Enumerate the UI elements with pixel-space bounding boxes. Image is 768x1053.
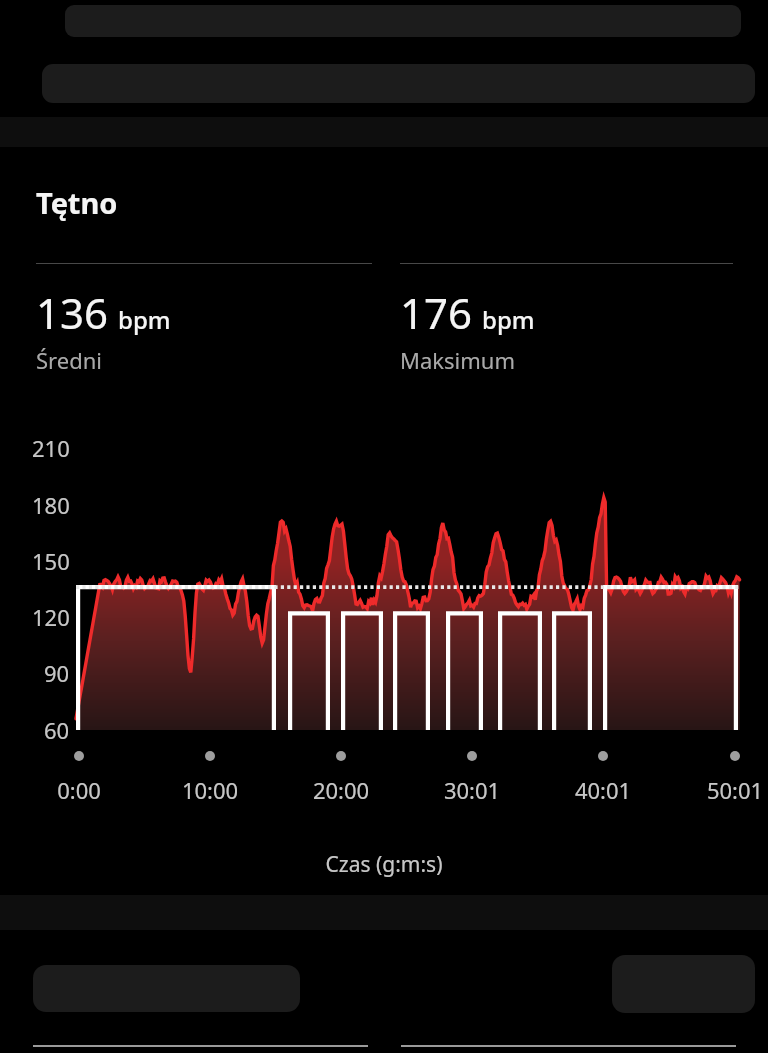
staticText: 0:00 <box>35 775 123 805</box>
staticText: 210 <box>32 433 70 463</box>
button[interactable]: More <box>612 955 755 1013</box>
staticText: bpm <box>118 303 171 336</box>
staticText: 30:01 <box>428 775 516 805</box>
staticText: bpm <box>482 303 535 336</box>
staticText: 40:01 <box>559 775 647 805</box>
staticText: 90 <box>44 658 70 688</box>
staticText: 176 <box>400 284 473 341</box>
staticText: 20:00 <box>297 775 385 805</box>
staticText: 10:00 <box>166 775 254 805</box>
button[interactable]: 176 <box>400 263 733 375</box>
staticText: Maksimum <box>400 345 515 375</box>
staticText: 120 <box>32 602 70 632</box>
staticText: Tętno <box>36 183 118 222</box>
staticText: 136 <box>36 284 109 341</box>
staticText: 150 <box>32 546 70 576</box>
staticText: 60 <box>44 715 70 745</box>
staticText: 50:01 <box>691 775 768 805</box>
staticText: Średni <box>36 345 102 375</box>
staticText: Czas (g:m:s) <box>0 850 768 879</box>
button[interactable]: 136 <box>36 263 372 375</box>
staticText: 180 <box>32 490 70 520</box>
